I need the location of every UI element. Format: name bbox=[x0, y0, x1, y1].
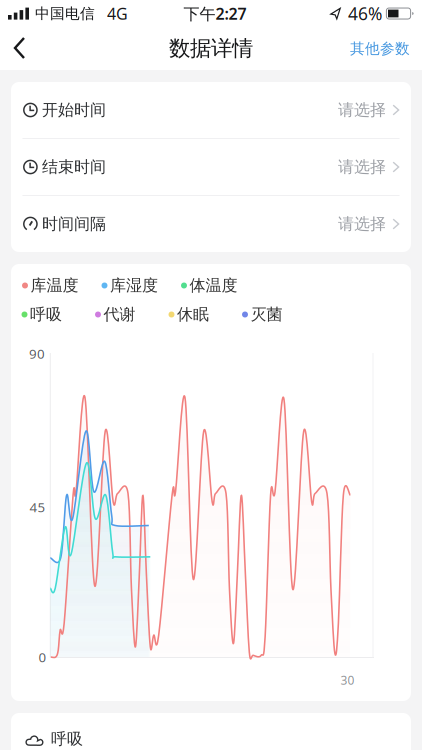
staticText: 代谢 bbox=[103, 305, 135, 324]
staticText: 45 bbox=[29, 498, 45, 516]
staticText: 下午2:27 bbox=[183, 3, 246, 24]
staticText: 请选择 bbox=[338, 100, 386, 120]
button[interactable]: 时间间隔 bbox=[11, 196, 411, 252]
button[interactable]: 结束时间 bbox=[11, 139, 411, 195]
staticText: 0 bbox=[38, 648, 46, 666]
staticText: 体温度 bbox=[189, 276, 237, 295]
staticText: 中国电信 bbox=[35, 4, 95, 22]
button[interactable]: 其他参数 bbox=[342, 27, 422, 70]
staticText: 灭菌 bbox=[250, 305, 282, 324]
staticText: 库温度 bbox=[30, 276, 78, 295]
staticText: 其他参数 bbox=[350, 39, 410, 57]
staticText: 46% bbox=[348, 2, 382, 25]
button[interactable]: 返回 bbox=[0, 27, 44, 70]
staticText: 30 bbox=[340, 672, 354, 688]
staticText: 休眠 bbox=[177, 305, 209, 324]
staticText: 请选择 bbox=[338, 214, 386, 234]
staticText: 呼吸 bbox=[51, 729, 83, 749]
staticText: 开始时间 bbox=[42, 100, 106, 120]
staticText: 结束时间 bbox=[42, 157, 106, 177]
button[interactable]: 呼吸 bbox=[11, 713, 411, 750]
staticText: 数据详情 bbox=[169, 35, 253, 62]
staticText: 4G bbox=[107, 3, 128, 24]
button[interactable]: 开始时间 bbox=[11, 82, 411, 138]
staticText: 时间间隔 bbox=[42, 214, 106, 234]
staticText: 呼吸 bbox=[30, 305, 62, 324]
staticText: 90 bbox=[29, 345, 45, 362]
staticText: 请选择 bbox=[338, 157, 386, 177]
staticText: 库湿度 bbox=[110, 276, 158, 295]
